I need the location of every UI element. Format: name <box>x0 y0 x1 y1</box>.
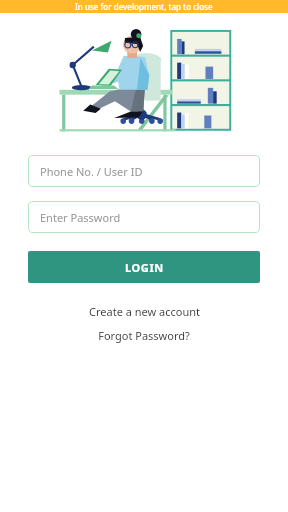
button[interactable]: LOGIN <box>28 251 260 283</box>
staticText: Create a new account <box>89 304 200 319</box>
staticText: Forgot Password? <box>98 328 190 343</box>
staticText: LOGIN <box>125 260 164 275</box>
button[interactable]: In use for development, tap to close <box>0 0 288 13</box>
button[interactable]: Enter Password <box>28 201 260 233</box>
staticText: Enter Password <box>40 210 121 225</box>
button[interactable]: Phone No. / User ID <box>28 155 260 187</box>
button[interactable]: Forgot Password? <box>0 328 288 343</box>
button[interactable]: Create a new account <box>0 304 288 319</box>
staticText: In use for development, tap to close <box>75 1 213 12</box>
staticText: Phone No. / User ID <box>40 164 143 179</box>
